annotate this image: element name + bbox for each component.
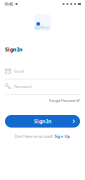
staticText: 10:45 [4, 1, 13, 7]
button[interactable]: Sign In [5, 115, 80, 128]
staticText: Email [14, 68, 24, 74]
button[interactable]: Forgot Password? [49, 98, 80, 103]
staticText: Sign Up [55, 134, 71, 139]
staticText: Forgot Password? [49, 98, 80, 103]
staticText: Don't have an account? [14, 134, 53, 139]
staticText: Sign In [5, 46, 22, 53]
button[interactable]: Don't have an account? [14, 134, 71, 139]
staticText: AppName [35, 26, 50, 29]
staticText: Sign In [34, 118, 51, 125]
staticText: Password [14, 84, 31, 89]
